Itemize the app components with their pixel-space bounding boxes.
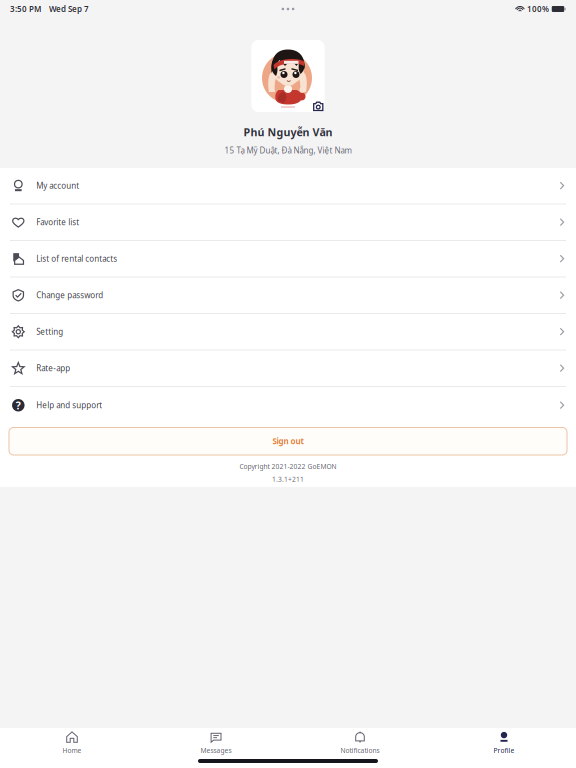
- button[interactable]: My account: [0, 168, 576, 204]
- staticText: ?: [16, 398, 21, 412]
- staticText: Setting: [36, 326, 63, 337]
- staticText: Favorite list: [36, 217, 79, 227]
- staticText: Change password: [36, 290, 103, 300]
- button[interactable]: Favorite list: [0, 204, 576, 241]
- button[interactable]: Change password: [0, 277, 576, 314]
- button[interactable]: Rate-app: [0, 350, 576, 387]
- button[interactable]: Home: [0, 728, 144, 758]
- button[interactable]: List of rental contacts: [0, 241, 576, 277]
- button[interactable]: Sign out: [9, 427, 567, 455]
- staticText: My account: [36, 180, 79, 191]
- staticText: Messages: [200, 746, 231, 755]
- staticText: Notifications: [340, 746, 379, 755]
- staticText: Copyright 2021-2022 GoEMON: [239, 462, 336, 471]
- staticText: Help and support: [36, 400, 102, 410]
- staticText: 100%: [527, 4, 549, 14]
- staticText: 3:50 PM: [10, 4, 41, 14]
- staticText: List of rental contacts: [36, 253, 117, 264]
- staticText: Rate-app: [36, 363, 70, 373]
- staticText: Profile: [493, 746, 514, 755]
- staticText: 1.3.1+211: [272, 475, 304, 484]
- button[interactable]: Profile: [432, 728, 576, 758]
- staticText: Home: [62, 746, 81, 755]
- button[interactable]: ?: [0, 387, 576, 423]
- button[interactable]: Change profile photo: [251, 40, 324, 112]
- staticText: 15 Tạ Mỹ Duật, Đà Nẵng, Việt Nam: [224, 145, 351, 156]
- staticText: Phú Nguyễn Văn: [243, 125, 332, 139]
- button[interactable]: Messages: [144, 728, 288, 758]
- staticText: Wed Sep 7: [49, 4, 89, 14]
- staticText: Sign out: [272, 436, 303, 446]
- button[interactable]: Notifications: [288, 728, 432, 758]
- button[interactable]: Setting: [0, 314, 576, 350]
